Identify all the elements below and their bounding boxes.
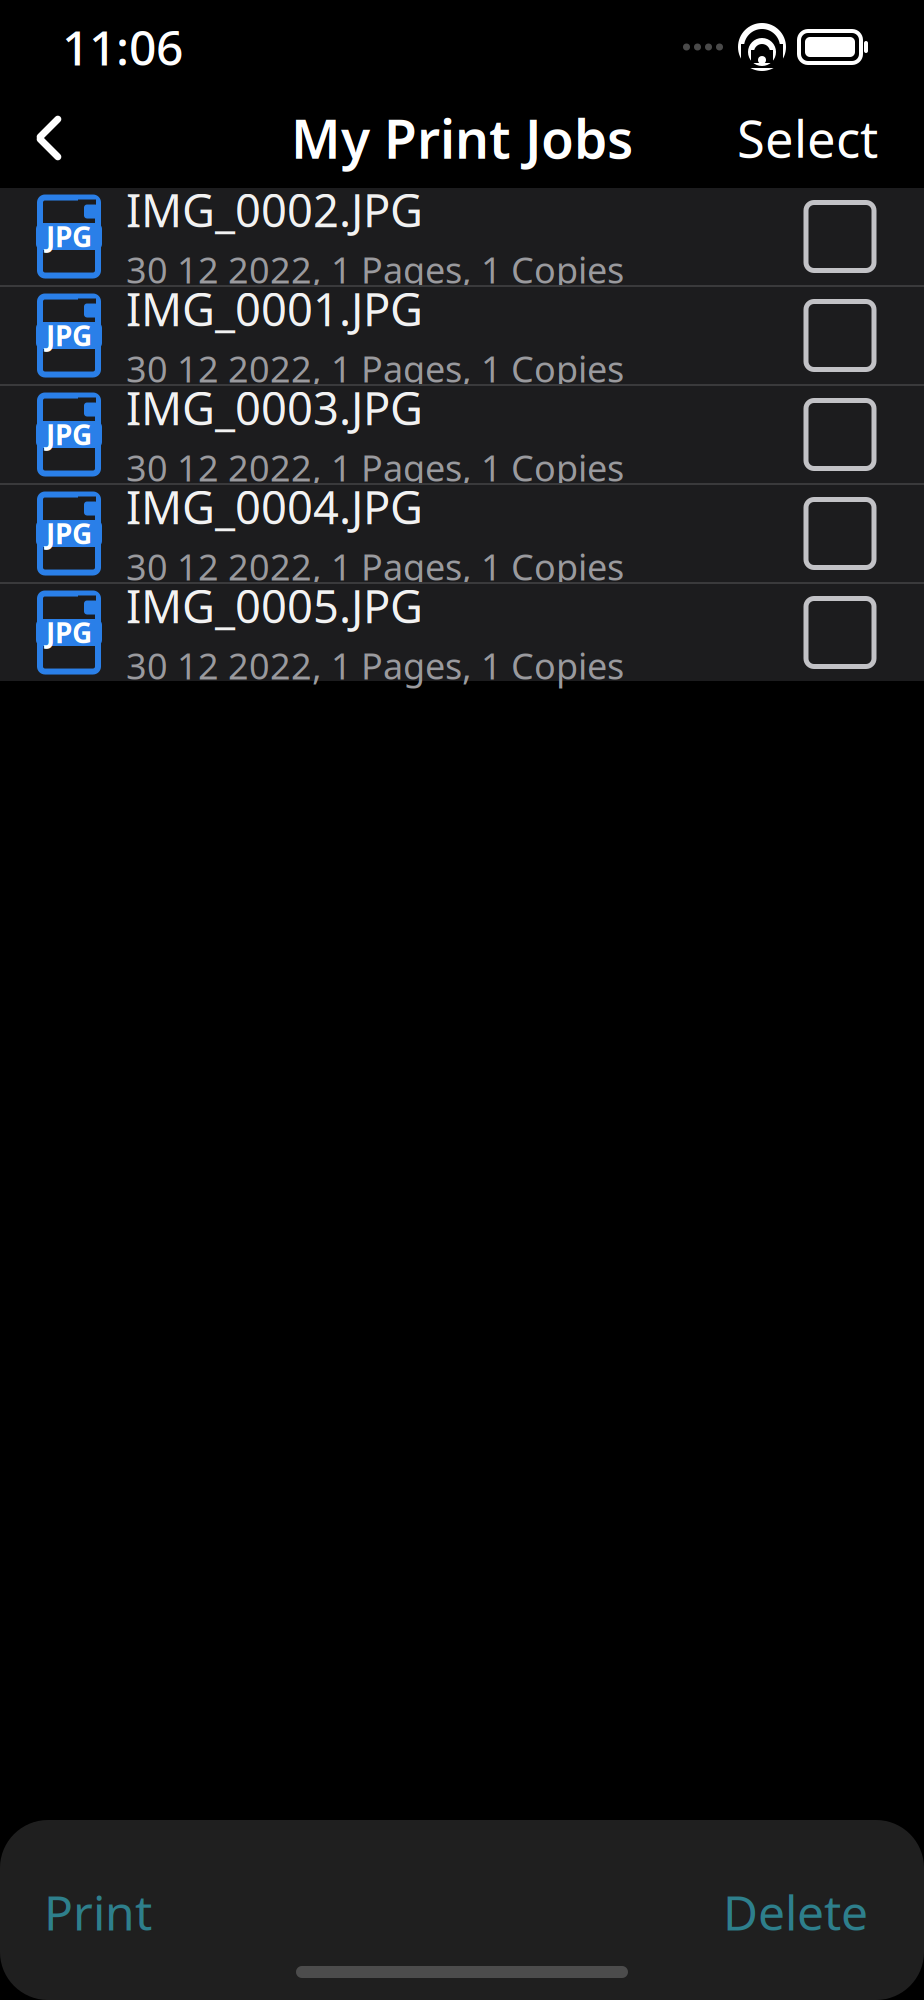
button[interactable]: JPG <box>0 287 924 384</box>
staticText: JPG <box>46 218 92 255</box>
staticText: Print <box>44 1880 152 1944</box>
staticText: JPG <box>46 614 92 651</box>
button[interactable]: Select <box>727 90 888 186</box>
staticText: Select <box>737 104 878 172</box>
button[interactable]: JPG <box>0 188 924 285</box>
staticText: 11:06 <box>62 15 183 79</box>
button[interactable]: JPG <box>0 584 924 681</box>
button[interactable]: JPG <box>0 386 924 483</box>
staticText: 30 12 2022, 1 Pages, 1 Copies <box>126 345 624 392</box>
button[interactable]: Delete <box>709 1868 882 1956</box>
staticText: IMG_0001.JPG <box>126 278 423 339</box>
staticText: 30 12 2022, 1 Pages, 1 Copies <box>126 246 624 293</box>
staticText: Delete <box>723 1880 868 1944</box>
staticText: JPG <box>46 515 92 552</box>
staticText: JPG <box>46 416 92 453</box>
staticText: 30 12 2022, 1 Pages, 1 Copies <box>126 444 624 491</box>
staticText: IMG_0003.JPG <box>126 377 423 438</box>
staticText: IMG_0002.JPG <box>126 179 423 240</box>
staticText: 30 12 2022, 1 Pages, 1 Copies <box>126 543 624 590</box>
staticText: IMG_0004.JPG <box>126 476 423 537</box>
button[interactable]: Back <box>12 101 86 175</box>
staticText: My Print Jobs <box>291 103 633 173</box>
button[interactable]: JPG <box>0 485 924 582</box>
button[interactable]: Print <box>30 1868 166 1956</box>
staticText: 30 12 2022, 1 Pages, 1 Copies <box>126 642 624 689</box>
staticText: JPG <box>46 317 92 354</box>
staticText: IMG_0005.JPG <box>126 575 423 636</box>
